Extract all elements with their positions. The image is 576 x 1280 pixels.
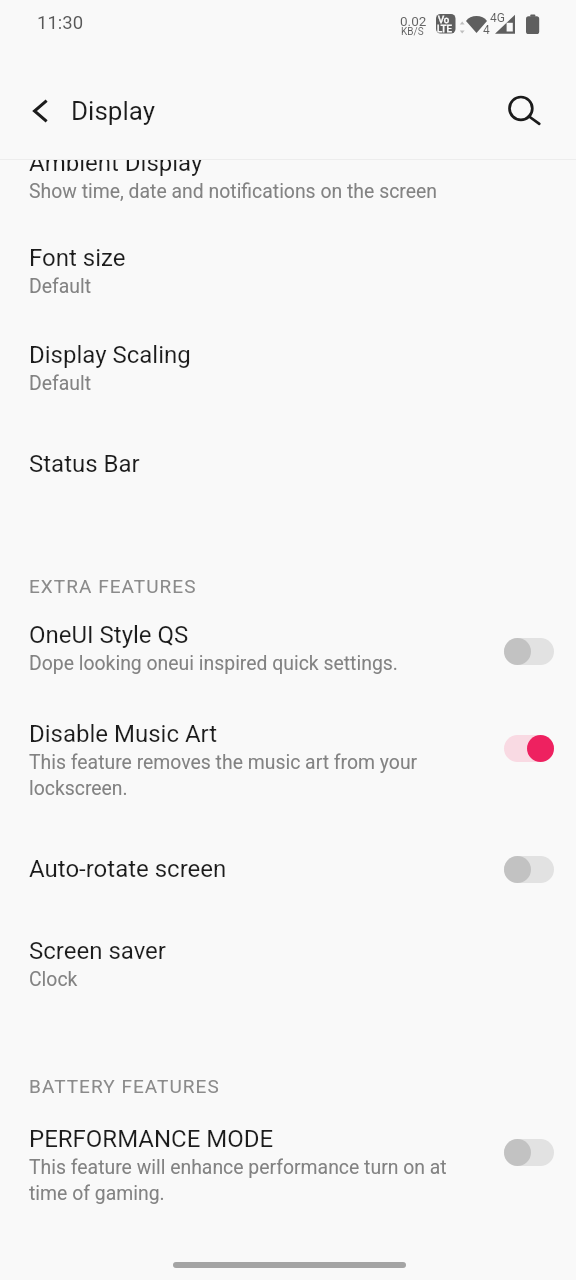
staticText: 4G [490,11,505,25]
staticText: Ambient Display [29,159,203,177]
staticText: Display Scaling [29,341,191,369]
button[interactable]: Disable Music Art [0,720,576,807]
staticText: Display [71,96,155,126]
staticText: 11:30 [37,12,84,34]
staticText: Status Bar [29,450,140,478]
button[interactable]: Back [12,83,68,139]
staticText: Dope looking oneui inspired quick settin… [29,652,459,675]
staticText: Font size [29,244,126,272]
staticText: EXTRA FEATURES [29,575,197,597]
button[interactable]: OneUI Style QS [0,621,576,683]
button[interactable]: Screen saver [0,937,576,999]
button[interactable]: Display Scaling [0,341,576,403]
staticText: OneUI Style QS [29,621,189,649]
button[interactable]: PERFORMANCE MODE [0,1125,576,1212]
button[interactable]: Search [497,85,553,141]
staticText: 4 [483,23,490,37]
staticText: Vo [438,14,450,25]
button[interactable]: Turn on Auto-rotate screen [490,842,568,897]
button[interactable]: Turn on PERFORMANCE MODE [490,1125,568,1180]
button[interactable]: Turn on OneUI Style QS [490,624,568,679]
button[interactable]: Turn off Disable Music Art [490,721,568,776]
button[interactable]: Auto-rotate screen [0,855,576,891]
staticText: This feature will enhance performance tu… [29,1156,459,1204]
button[interactable]: Ambient Display [0,159,576,211]
button[interactable]: Font size [0,244,576,306]
staticText: KB/S [401,26,424,38]
staticText: Auto-rotate screen [29,855,227,883]
staticText: BATTERY FEATURES [29,1075,220,1097]
staticText: Default [29,372,459,395]
staticText: Default [29,275,459,298]
staticText: PERFORMANCE MODE [29,1125,274,1153]
staticText: Show time, date and notifications on the… [29,180,479,203]
staticText: Screen saver [29,937,166,965]
button[interactable]: Status Bar [0,450,576,486]
staticText: Disable Music Art [29,720,218,748]
staticText: 0.02 [400,13,427,29]
staticText: This feature removes the music art from … [29,751,429,799]
staticText: Clock [29,968,459,991]
staticText: LTE [437,23,452,34]
